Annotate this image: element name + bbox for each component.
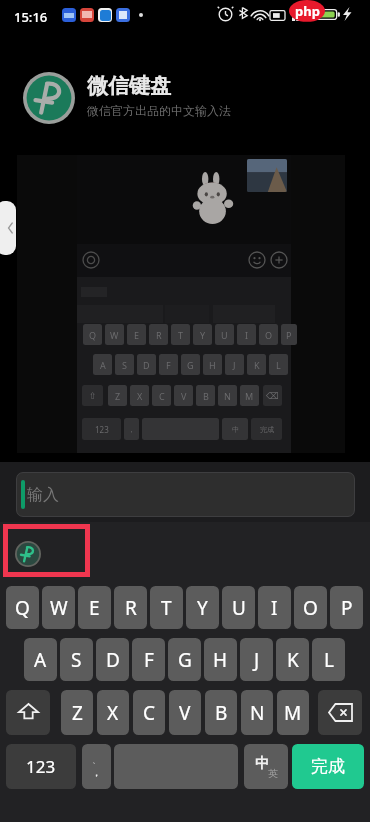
- button[interactable]: B: [205, 690, 237, 735]
- staticText: B: [215, 700, 228, 726]
- staticText: X: [107, 700, 119, 726]
- button[interactable]: Z: [61, 690, 93, 735]
- staticText: Z: [115, 390, 121, 402]
- staticText: N: [224, 390, 231, 402]
- staticText: E: [134, 329, 140, 341]
- staticText: R: [125, 595, 137, 621]
- staticText: Z: [72, 700, 83, 726]
- staticText: G: [187, 359, 194, 371]
- staticText: O: [303, 595, 318, 621]
- staticText: U: [221, 329, 228, 341]
- staticText: 15:16: [14, 8, 48, 26]
- staticText: ⇧: [89, 391, 97, 401]
- staticText: Y: [197, 595, 208, 621]
- staticText: X: [137, 390, 143, 402]
- button[interactable]: I: [258, 586, 291, 629]
- button[interactable]: V: [169, 690, 201, 735]
- button[interactable]: N: [241, 690, 273, 735]
- staticText: N: [250, 700, 265, 726]
- button[interactable]: [114, 744, 238, 789]
- staticText: B: [203, 390, 209, 402]
- staticText: A: [100, 359, 106, 371]
- button[interactable]: Back: [0, 201, 16, 255]
- button[interactable]: O: [294, 586, 327, 629]
- staticText: 微信键盘: [87, 73, 171, 99]
- button[interactable]: T: [150, 586, 183, 629]
- button[interactable]: A: [24, 638, 57, 681]
- staticText: 123: [95, 424, 109, 435]
- button[interactable]: H: [204, 638, 237, 681]
- staticText: T: [178, 329, 184, 341]
- button[interactable]: Q: [6, 586, 39, 629]
- staticText: 微信官方出品的中文输入法: [87, 103, 231, 118]
- staticText: D: [106, 647, 120, 673]
- button[interactable]: C: [133, 690, 165, 735]
- staticText: ，: [128, 425, 135, 434]
- staticText: W: [110, 329, 119, 341]
- staticText: ⌫: [266, 391, 279, 401]
- button[interactable]: P: [330, 586, 363, 629]
- staticText: H: [209, 359, 216, 371]
- staticText: O: [265, 329, 273, 341]
- staticText: 输入: [27, 485, 59, 505]
- staticText: C: [159, 390, 165, 402]
- staticText: 完成: [260, 425, 274, 434]
- staticText: 123: [26, 755, 56, 778]
- staticText: Q: [89, 329, 97, 341]
- button[interactable]: 123: [6, 744, 76, 789]
- staticText: W: [50, 595, 68, 621]
- staticText: C: [143, 700, 156, 726]
- button[interactable]: E: [78, 586, 111, 629]
- button[interactable]: J: [240, 638, 273, 681]
- staticText: J: [233, 359, 236, 371]
- button[interactable]: G: [168, 638, 201, 681]
- staticText: H: [213, 647, 228, 673]
- staticText: P: [341, 595, 353, 621]
- button[interactable]: 中: [244, 744, 288, 789]
- button[interactable]: 输入: [16, 472, 355, 517]
- button[interactable]: D: [96, 638, 129, 681]
- staticText: 英: [268, 767, 278, 780]
- staticText: 中: [255, 755, 269, 773]
- button[interactable]: 完成: [292, 744, 364, 789]
- staticText: I: [271, 595, 278, 621]
- button[interactable]: L: [312, 638, 345, 681]
- staticText: P: [286, 329, 292, 341]
- button[interactable]: Y: [186, 586, 219, 629]
- button[interactable]: 、: [82, 744, 111, 789]
- staticText: V: [181, 390, 187, 402]
- staticText: Y: [200, 329, 206, 341]
- staticText: M: [245, 390, 254, 402]
- staticText: L: [324, 647, 334, 673]
- staticText: ，: [91, 765, 102, 779]
- staticText: K: [254, 359, 260, 371]
- staticText: D: [143, 359, 150, 371]
- button[interactable]: Shift: [6, 690, 50, 735]
- staticText: 中: [232, 425, 239, 434]
- staticText: F: [166, 359, 171, 371]
- staticText: S: [71, 647, 82, 673]
- staticText: R: [156, 329, 162, 341]
- staticText: K: [287, 647, 299, 673]
- staticText: 完成: [311, 756, 345, 777]
- button[interactable]: R: [114, 586, 147, 629]
- button[interactable]: W: [42, 586, 75, 629]
- button[interactable]: M: [277, 690, 309, 735]
- staticText: G: [178, 647, 192, 673]
- staticText: Q: [15, 595, 30, 621]
- button[interactable]: U: [222, 586, 255, 629]
- staticText: V: [179, 700, 191, 726]
- staticText: 、: [92, 754, 101, 765]
- staticText: J: [254, 647, 260, 673]
- staticText: A: [34, 647, 47, 673]
- button[interactable]: K: [276, 638, 309, 681]
- staticText: php: [295, 2, 320, 20]
- button[interactable]: Backspace: [318, 690, 362, 735]
- staticText: I: [245, 329, 249, 341]
- button[interactable]: X: [97, 690, 129, 735]
- staticText: L: [276, 359, 281, 371]
- button[interactable]: S: [60, 638, 93, 681]
- button[interactable]: F: [132, 638, 165, 681]
- staticText: E: [89, 595, 100, 621]
- staticText: F: [144, 647, 154, 673]
